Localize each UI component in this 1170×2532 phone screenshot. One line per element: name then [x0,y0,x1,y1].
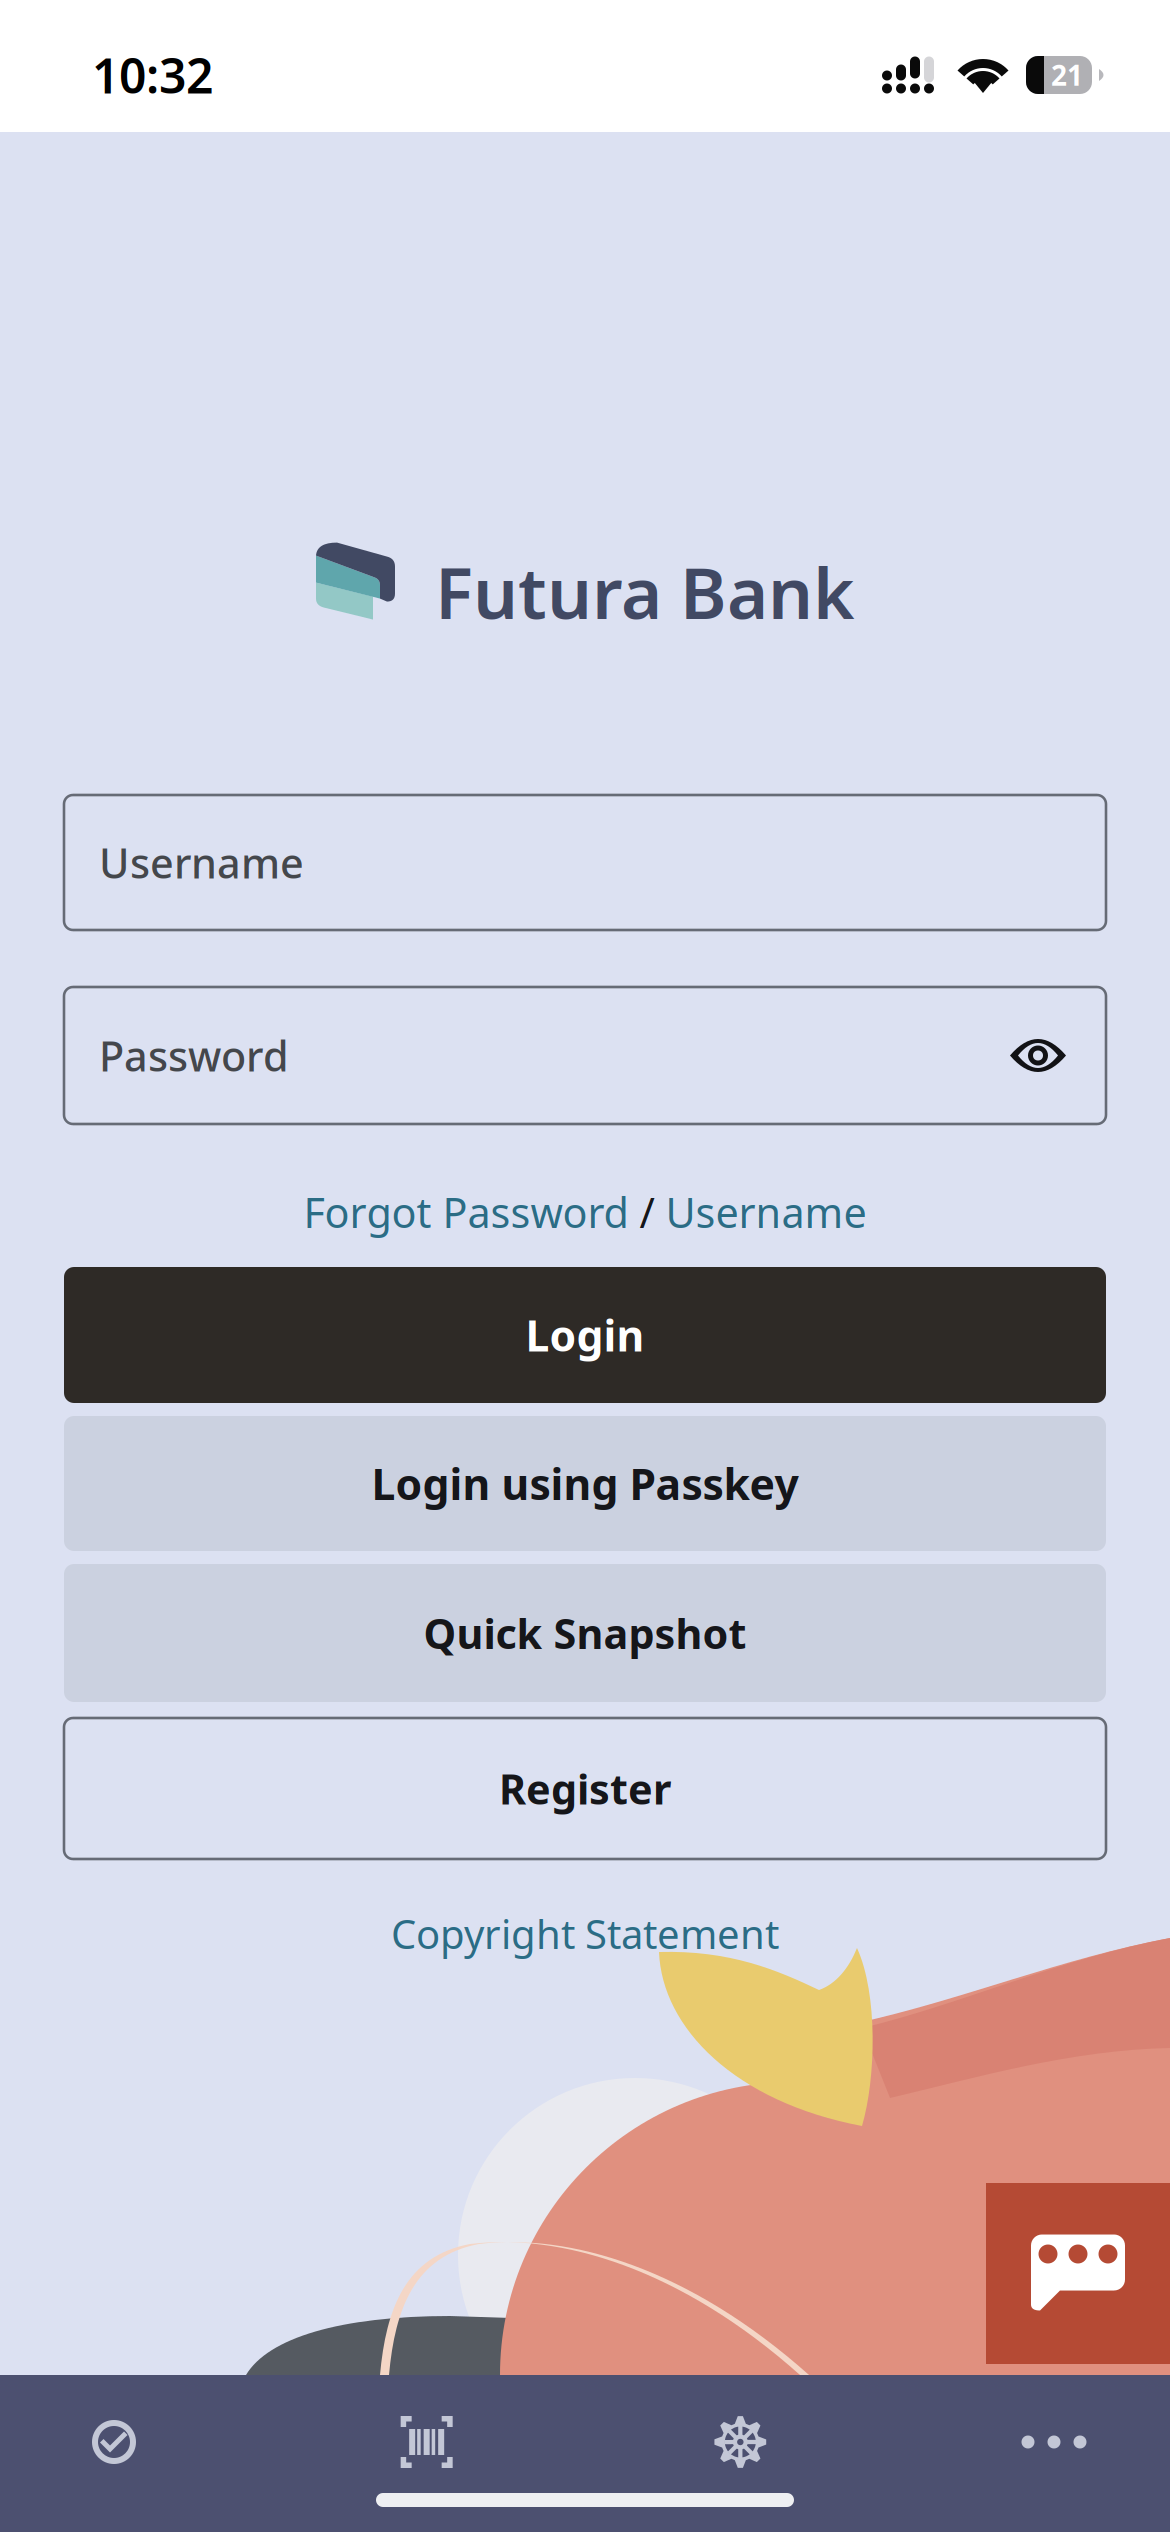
staticText: 21 [1051,56,1083,94]
button[interactable]: Register [64,1718,1106,1859]
button[interactable]: Forgot Password [303,1185,628,1239]
button[interactable]: More [1028,2416,1080,2468]
staticText: Login using Passkey [371,1455,798,1512]
button[interactable]: Approvals [89,2417,139,2467]
button[interactable]: Copyright Statement [391,1907,779,1960]
staticText: / [628,1185,665,1239]
staticText: Username [665,1185,866,1239]
staticText: Quick Snapshot [423,1606,746,1660]
staticText: 10:32 [92,43,213,107]
staticText: Password [99,1028,289,1083]
button[interactable]: Settings [714,2416,766,2468]
staticText: Register [499,1761,671,1816]
staticText: Copyright Statement [391,1907,779,1960]
button[interactable]: Quick Snapshot [64,1564,1106,1702]
staticText: Forgot Password [303,1185,628,1239]
staticText: Futura Bank [435,545,855,638]
button[interactable]: Username [665,1185,866,1239]
staticText: Login [525,1307,644,1363]
button[interactable]: Chat [986,2183,1170,2364]
button[interactable]: Login using Passkey [64,1416,1106,1551]
button[interactable]: Scan QR code [401,2416,453,2468]
staticText: Username [99,835,304,890]
button[interactable]: Show password [1006,1024,1070,1086]
button[interactable]: Login [64,1267,1106,1403]
